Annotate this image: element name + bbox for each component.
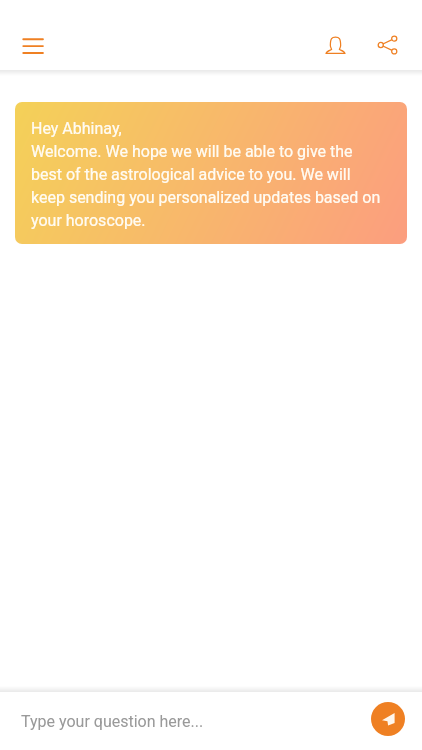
button[interactable]: Type your question here... [21, 712, 371, 731]
button[interactable]: Hey Abhinay, Welcome. We hope we will be… [15, 102, 407, 244]
button[interactable]: Profile [313, 23, 357, 67]
staticText: Hey Abhinay, Welcome. We hope we will be… [31, 119, 387, 230]
staticText: Type your question here... [21, 712, 204, 731]
button[interactable]: Send [371, 702, 405, 736]
button[interactable]: Share [365, 23, 409, 67]
button[interactable]: Menu [11, 26, 55, 56]
